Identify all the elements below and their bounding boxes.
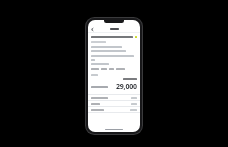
button[interactable] xyxy=(88,95,140,100)
staticText: 29,000 xyxy=(116,82,137,92)
button[interactable] xyxy=(88,107,140,112)
button[interactable] xyxy=(88,101,140,106)
button[interactable]: Back xyxy=(89,26,95,32)
